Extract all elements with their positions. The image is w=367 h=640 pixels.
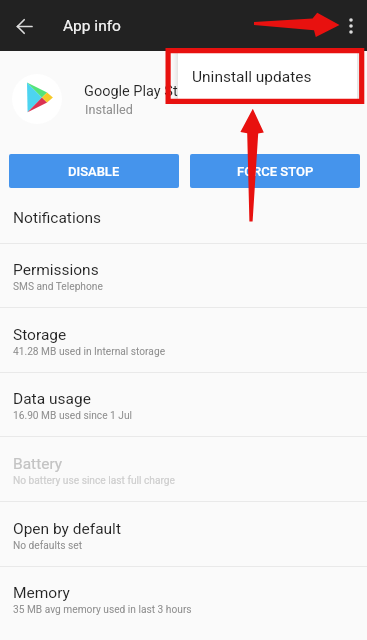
staticText: 41.28 MB used in Internal storage bbox=[13, 346, 166, 358]
staticText: FORCE STOP bbox=[237, 164, 314, 179]
button[interactable]: Uninstall updates bbox=[178, 53, 357, 101]
button[interactable]: Memory bbox=[0, 566, 367, 640]
staticText: Data usage bbox=[13, 390, 91, 408]
button[interactable]: Battery bbox=[0, 437, 367, 502]
button[interactable]: Google Play Store bbox=[0, 51, 367, 123]
staticText: Open by default bbox=[13, 520, 121, 538]
staticText: Google Play Store bbox=[84, 83, 199, 100]
staticText: Uninstall updates bbox=[192, 68, 312, 86]
staticText: No battery use since last full charge bbox=[13, 475, 175, 487]
button[interactable]: Notifications bbox=[0, 189, 367, 244]
staticText: Notifications bbox=[13, 209, 102, 227]
staticText: App info bbox=[63, 17, 121, 35]
button[interactable]: Permissions bbox=[0, 243, 367, 308]
staticText: Storage bbox=[13, 326, 67, 344]
staticText: 35 MB avg memory used in last 3 hours bbox=[13, 604, 192, 616]
staticText: Permissions bbox=[13, 261, 99, 279]
staticText: Battery bbox=[13, 455, 63, 473]
staticText: No defaults set bbox=[13, 540, 83, 552]
staticText: SMS and Telephone bbox=[13, 281, 103, 293]
button[interactable]: FORCE STOP bbox=[190, 154, 360, 188]
staticText: DISABLE bbox=[68, 164, 120, 179]
button[interactable]: Back bbox=[6, 8, 42, 44]
staticText: 16.90 MB used since 1 Jul bbox=[13, 410, 133, 422]
button[interactable]: Data usage bbox=[0, 372, 367, 437]
button[interactable]: More options bbox=[333, 8, 367, 44]
button[interactable]: Storage bbox=[0, 308, 367, 373]
button[interactable]: Open by default bbox=[0, 502, 367, 567]
staticText: Installed bbox=[85, 102, 133, 117]
staticText: Memory bbox=[13, 584, 70, 602]
button[interactable]: DISABLE bbox=[9, 154, 179, 188]
